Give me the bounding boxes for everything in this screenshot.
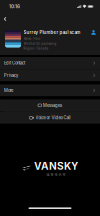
- staticText: Surrey Plumber paul scam: [23, 30, 80, 35]
- staticText: Messages: [43, 103, 62, 108]
- button[interactable]: Back: [0, 13, 12, 25]
- button[interactable]: More: [0, 84, 100, 96]
- staticText: VANSKY: [34, 160, 78, 172]
- button[interactable]: Surrey Plumber paul scam: [0, 25, 100, 55]
- staticText: 温 哥 华 天 空: [47, 173, 66, 176]
- button[interactable]: Edit Contact: [0, 57, 100, 69]
- staticText: More: [4, 88, 13, 93]
- staticText: Voice or Video Call: [35, 115, 70, 120]
- staticText: Privacy: [4, 73, 18, 78]
- button[interactable]: Messages: [0, 99, 100, 111]
- staticText: Edit Contact: [4, 61, 25, 65]
- staticText: 10:16: [9, 4, 20, 9]
- staticText: Region: Canada: [23, 47, 48, 50]
- staticText: Name: Paul: [23, 37, 40, 40]
- staticText: WeChat ID: paulwong: [23, 42, 56, 45]
- button[interactable]: Voice or Video Call: [0, 112, 100, 124]
- button[interactable]: Privacy: [0, 69, 100, 81]
